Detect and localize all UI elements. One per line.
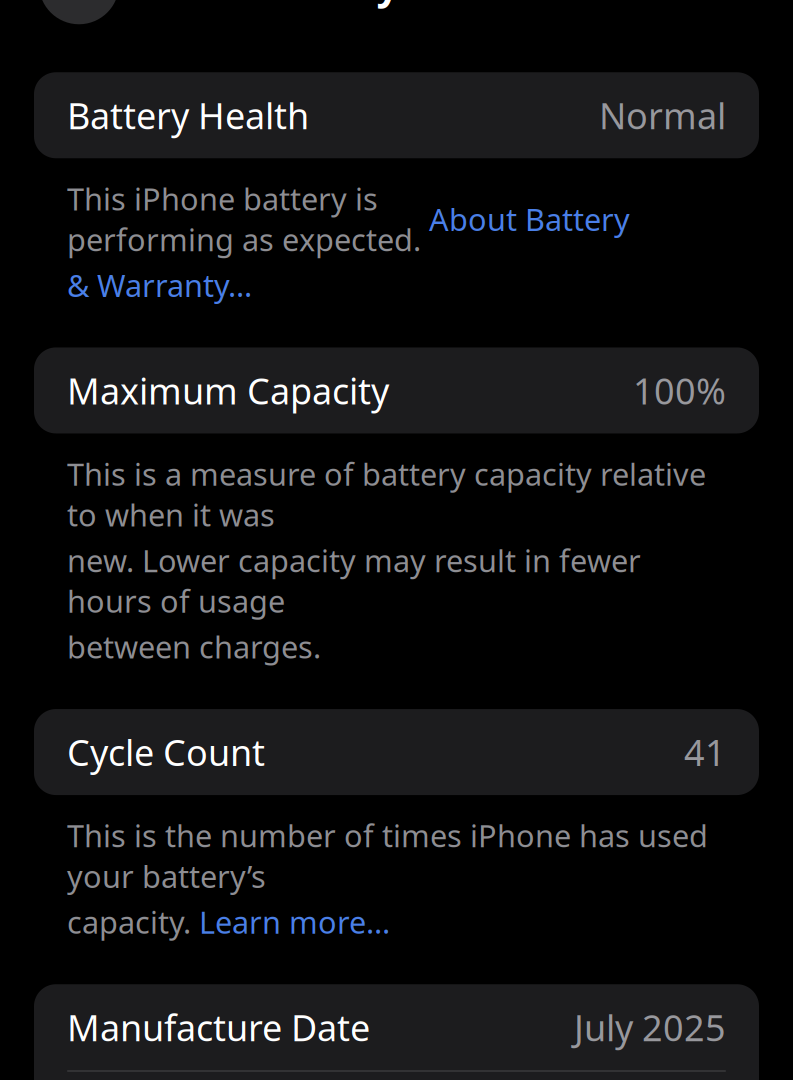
staticText: This is the number of times iPhone has u… [67,815,708,896]
staticText: capacity. [67,901,199,942]
staticText: Maximum Capacity [67,366,389,414]
button[interactable]: Manufacture Date [34,984,759,1070]
staticText: About Battery [429,199,630,239]
staticText: Learn more… [199,901,390,942]
button[interactable]: Back [39,0,119,24]
staticText: & Warranty… [67,265,252,305]
staticText: 100% [633,366,726,414]
button[interactable]: Battery Health [34,72,759,158]
staticText: This iPhone battery is performing as exp… [67,178,429,260]
staticText: Battery Health [67,91,309,139]
staticText: July 2025 [574,1003,726,1051]
staticText: between charges. [67,626,321,667]
staticText: Cycle Count [67,728,265,776]
button[interactable]: Cycle Count [34,709,759,795]
staticText: new. Lower capacity may result in fewer … [67,540,641,621]
staticText: Battery Health [249,0,543,11]
staticText: Manufacture Date [67,1003,370,1051]
staticText: Normal [599,91,726,139]
button[interactable]: Maximum Capacity [34,347,759,433]
staticText: This is a measure of battery capacity re… [67,453,706,535]
staticText: 41 [684,728,726,776]
